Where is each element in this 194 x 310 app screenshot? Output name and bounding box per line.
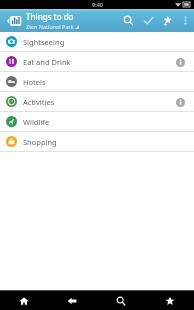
button[interactable]: Navigate up xyxy=(0,9,26,32)
button[interactable]: Shopping xyxy=(0,132,194,151)
staticText: Sightseeing xyxy=(23,37,65,47)
staticText: Hotels xyxy=(23,77,46,87)
staticText: Wildlife xyxy=(23,117,50,127)
staticText: 9:40 xyxy=(92,1,103,8)
button[interactable]: Favorites xyxy=(145,291,194,310)
staticText: Things to do xyxy=(26,11,74,22)
staticText: Zion National Park xyxy=(26,23,74,30)
button[interactable]: Check in xyxy=(138,9,158,32)
button[interactable]: Save xyxy=(158,9,178,32)
button[interactable]: Sightseeing xyxy=(0,32,194,51)
staticText: Shopping xyxy=(23,137,57,147)
button[interactable]: Things to do xyxy=(26,9,118,32)
button[interactable]: Back xyxy=(48,291,96,310)
button[interactable]: Home xyxy=(0,291,48,310)
button[interactable]: Eat and Drink xyxy=(0,52,194,71)
button[interactable]: Activities xyxy=(0,92,194,111)
staticText: Eat and Drink xyxy=(23,57,71,67)
button[interactable]: More info about Eat and Drink xyxy=(172,54,188,70)
button[interactable]: Search xyxy=(118,9,138,32)
button[interactable]: More options xyxy=(178,9,192,32)
button[interactable]: Wildlife xyxy=(0,112,194,131)
button[interactable]: Hotels xyxy=(0,72,194,91)
staticText: Activities xyxy=(23,97,55,107)
button[interactable]: More info about Activities xyxy=(172,94,188,110)
button[interactable]: Search xyxy=(96,291,145,310)
